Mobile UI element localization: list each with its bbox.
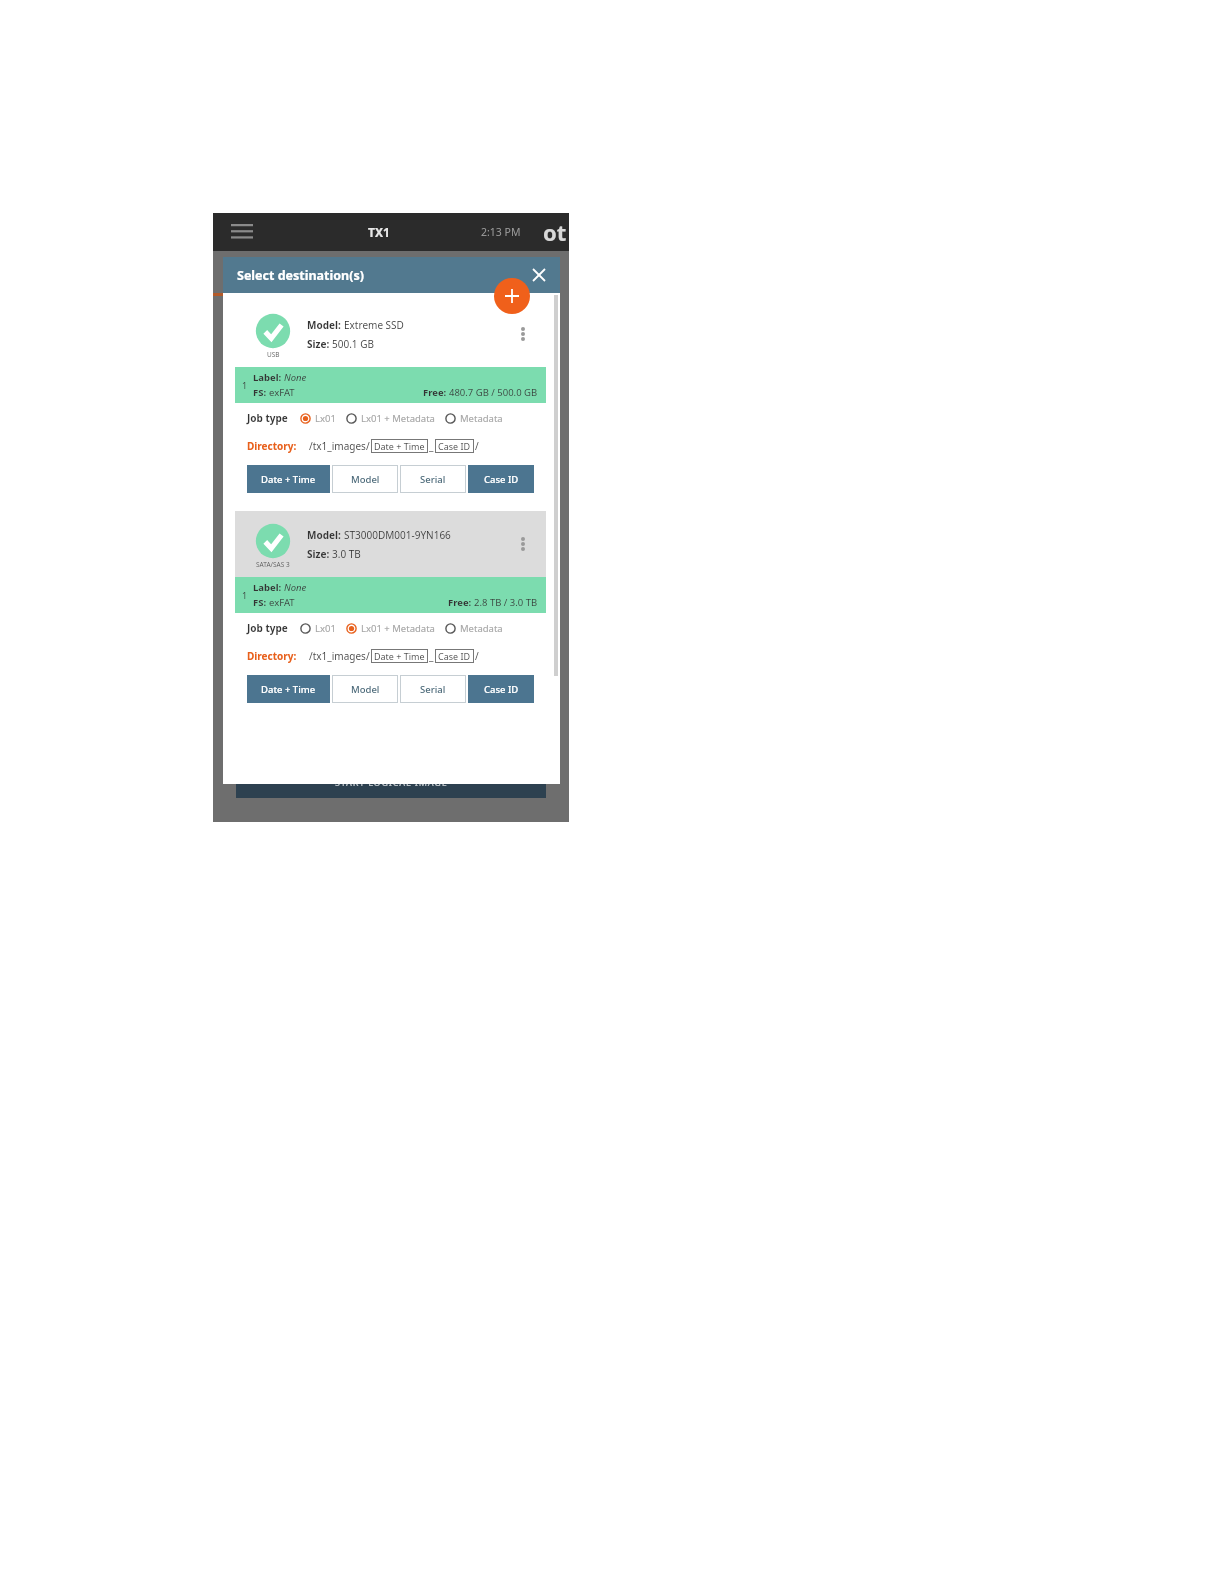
button[interactable]: START LOGICAL IMAGE (236, 766, 546, 798)
staticText: /tx1_images/ (309, 649, 370, 663)
staticText: None (284, 581, 307, 594)
staticText: Model (351, 473, 380, 486)
button[interactable]: More options (510, 321, 536, 347)
staticText: Select destination(s) (237, 267, 364, 284)
button[interactable]: Case ID (438, 650, 471, 662)
button[interactable]: Case ID (468, 465, 534, 493)
button[interactable]: SATA/SAS 3 (235, 511, 546, 577)
staticText: 500.1 GB (332, 337, 374, 351)
staticText: USB (267, 350, 280, 359)
staticText: Date + Time (374, 650, 425, 662)
staticText: None (284, 371, 307, 384)
staticText: Serial (420, 683, 446, 696)
staticText: Directory: (247, 439, 297, 453)
button[interactable]: Date + Time (374, 650, 425, 662)
staticText: Size: (307, 547, 332, 561)
staticText: Metadata (460, 412, 503, 425)
staticText: Lx01 + Metadata (361, 622, 435, 635)
staticText: /tx1_images/ (309, 439, 370, 453)
staticText: 3.0 TB (332, 547, 361, 561)
staticText: exFAT (269, 386, 295, 399)
staticText: Date + Time (261, 473, 316, 486)
button[interactable]: Lx01 + Metadata (346, 412, 435, 425)
button[interactable]: Menu (225, 215, 259, 249)
staticText: Extreme SSD (344, 318, 404, 332)
button[interactable]: Add destination (494, 278, 530, 314)
staticText: Free: (423, 386, 449, 399)
button[interactable]: Date + Time (247, 675, 330, 703)
button[interactable]: Close (526, 262, 552, 288)
staticText: Model: (307, 528, 344, 542)
button[interactable]: Case ID (468, 675, 534, 703)
staticText: FS: (253, 386, 269, 399)
staticText: Size: (307, 337, 332, 351)
staticText: exFAT (269, 596, 295, 609)
button[interactable]: Metadata (445, 622, 503, 635)
staticText: Lx01 (315, 622, 336, 635)
staticText: 1 (242, 589, 248, 601)
button[interactable]: Lx01 (300, 412, 336, 425)
button[interactable]: Model (332, 465, 398, 493)
button[interactable]: Serial (400, 465, 466, 493)
staticText: Case ID (484, 473, 519, 486)
staticText: / (475, 439, 479, 453)
staticText: Serial (420, 473, 446, 486)
button[interactable]: Date + Time (374, 440, 425, 452)
staticText: _ (429, 439, 434, 453)
staticText: Job type (247, 621, 288, 635)
staticText: Lx01 + Metadata (361, 412, 435, 425)
staticText: / (475, 649, 479, 663)
staticText: Date + Time (374, 440, 425, 452)
staticText: Metadata (460, 622, 503, 635)
staticText: Date + Time (261, 683, 316, 696)
button[interactable]: Lx01 (300, 622, 336, 635)
staticText: Job type (247, 411, 288, 425)
button[interactable]: Logo (543, 217, 567, 247)
staticText: Model: (307, 318, 344, 332)
staticText: Case ID (438, 650, 471, 662)
staticText: 2.8 TB / 3.0 TB (474, 596, 538, 609)
staticText: SATA/SAS 3 (256, 560, 290, 569)
staticText: 480.7 GB / 500.0 GB (449, 386, 538, 399)
button[interactable]: 1 (235, 577, 546, 613)
staticText: Directory: (247, 649, 297, 663)
button[interactable]: Metadata (445, 412, 503, 425)
staticText: 2:13 PM (481, 225, 521, 239)
staticText: ST3000DM001-9YN166 (344, 528, 451, 542)
button[interactable]: Lx01 + Metadata (346, 622, 435, 635)
staticText: Label: (253, 581, 284, 594)
button[interactable]: Serial (400, 675, 466, 703)
staticText: FS: (253, 596, 269, 609)
staticText: Case ID (438, 440, 471, 452)
button[interactable]: 1 (235, 367, 546, 403)
staticText: TX1 (368, 224, 390, 240)
button[interactable]: More options (510, 531, 536, 557)
staticText: START LOGICAL IMAGE (335, 776, 448, 788)
staticText: Case ID (484, 683, 519, 696)
button[interactable]: Model (332, 675, 398, 703)
button[interactable]: Date + Time (247, 465, 330, 493)
staticText: Model (351, 683, 380, 696)
staticText: ot (543, 217, 567, 247)
staticText: 1 (242, 379, 248, 391)
staticText: _ (429, 649, 434, 663)
button[interactable]: Case ID (438, 440, 471, 452)
staticText: Lx01 (315, 412, 336, 425)
button[interactable]: USB (235, 301, 546, 367)
staticText: Free: (448, 596, 474, 609)
staticText: Label: (253, 371, 284, 384)
